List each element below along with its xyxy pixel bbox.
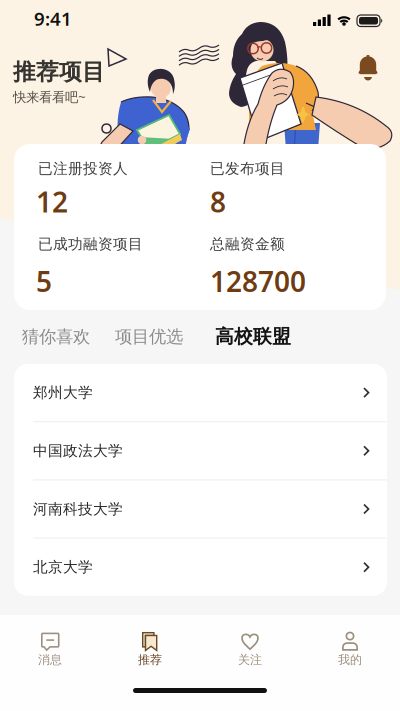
- staticText: 我的: [338, 652, 362, 667]
- staticText: 消息: [38, 652, 62, 667]
- staticText: 12: [36, 183, 68, 220]
- button[interactable]: 高校联盟: [215, 325, 291, 348]
- staticText: 郑州大学: [33, 384, 93, 402]
- button[interactable]: 郑州大学: [14, 364, 387, 421]
- button[interactable]: 消息: [0, 627, 100, 671]
- staticText: 推荐项目: [13, 58, 105, 86]
- staticText: 中国政法大学: [33, 442, 123, 460]
- staticText: 总融资金额: [210, 235, 285, 253]
- staticText: 关注: [238, 652, 262, 667]
- button[interactable]: 关注: [200, 627, 300, 671]
- staticText: 猜你喜欢: [22, 326, 90, 347]
- staticText: 北京大学: [33, 558, 93, 576]
- button[interactable]: 猜你喜欢: [22, 326, 90, 347]
- staticText: 8: [210, 183, 226, 220]
- button[interactable]: 北京大学: [14, 539, 387, 596]
- staticText: 128700: [210, 262, 306, 300]
- staticText: 9:41: [34, 6, 72, 31]
- button[interactable]: 项目优选: [115, 326, 183, 347]
- button[interactable]: 河南科技大学: [14, 480, 387, 538]
- staticText: 河南科技大学: [33, 500, 123, 518]
- staticText: 项目优选: [115, 326, 183, 347]
- staticText: 快来看看吧~: [13, 88, 86, 106]
- button[interactable]: 中国政法大学: [14, 422, 387, 479]
- staticText: 已发布项目: [210, 159, 285, 177]
- button[interactable]: 通知: [353, 54, 383, 84]
- staticText: 推荐: [138, 652, 162, 667]
- button[interactable]: 我的: [300, 627, 400, 671]
- staticText: 5: [36, 262, 52, 300]
- staticText: 已成功融资项目: [38, 235, 143, 253]
- staticText: 已注册投资人: [38, 159, 128, 177]
- staticText: 高校联盟: [215, 325, 291, 348]
- button[interactable]: 推荐: [100, 627, 200, 671]
